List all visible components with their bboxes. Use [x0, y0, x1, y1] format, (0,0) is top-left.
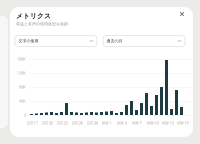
staticText: 160K: [17, 57, 26, 61]
button[interactable]: Close: [177, 9, 187, 19]
staticText: メトリクス: [16, 12, 51, 20]
staticText: 40K: [19, 99, 26, 103]
staticText: Oct 26: [71, 120, 82, 125]
staticText: 120K: [17, 71, 26, 75]
staticText: Nov 10: [146, 120, 159, 125]
staticText: Nov 1: [101, 120, 111, 125]
button[interactable]: 過去の月: [103, 35, 185, 46]
staticText: Nov 4: [116, 120, 127, 125]
staticText: Nov 15: [176, 120, 188, 125]
staticText: 過去の月: [106, 38, 122, 43]
staticText: 80K: [19, 85, 26, 89]
staticText: Oct 20: [41, 120, 53, 125]
button[interactable]: 文字の使用: [15, 35, 97, 46]
staticText: Nov 13: [161, 120, 173, 125]
staticText: Oct 29: [86, 120, 97, 125]
staticText: Oct 17: [26, 120, 37, 125]
staticText: 収益と音声の使用状況を追跡: [16, 21, 68, 26]
staticText: 0: [24, 113, 26, 117]
staticText: Nov 7: [131, 120, 141, 125]
staticText: 文字の使用: [18, 38, 38, 43]
staticText: Oct 23: [56, 120, 67, 125]
